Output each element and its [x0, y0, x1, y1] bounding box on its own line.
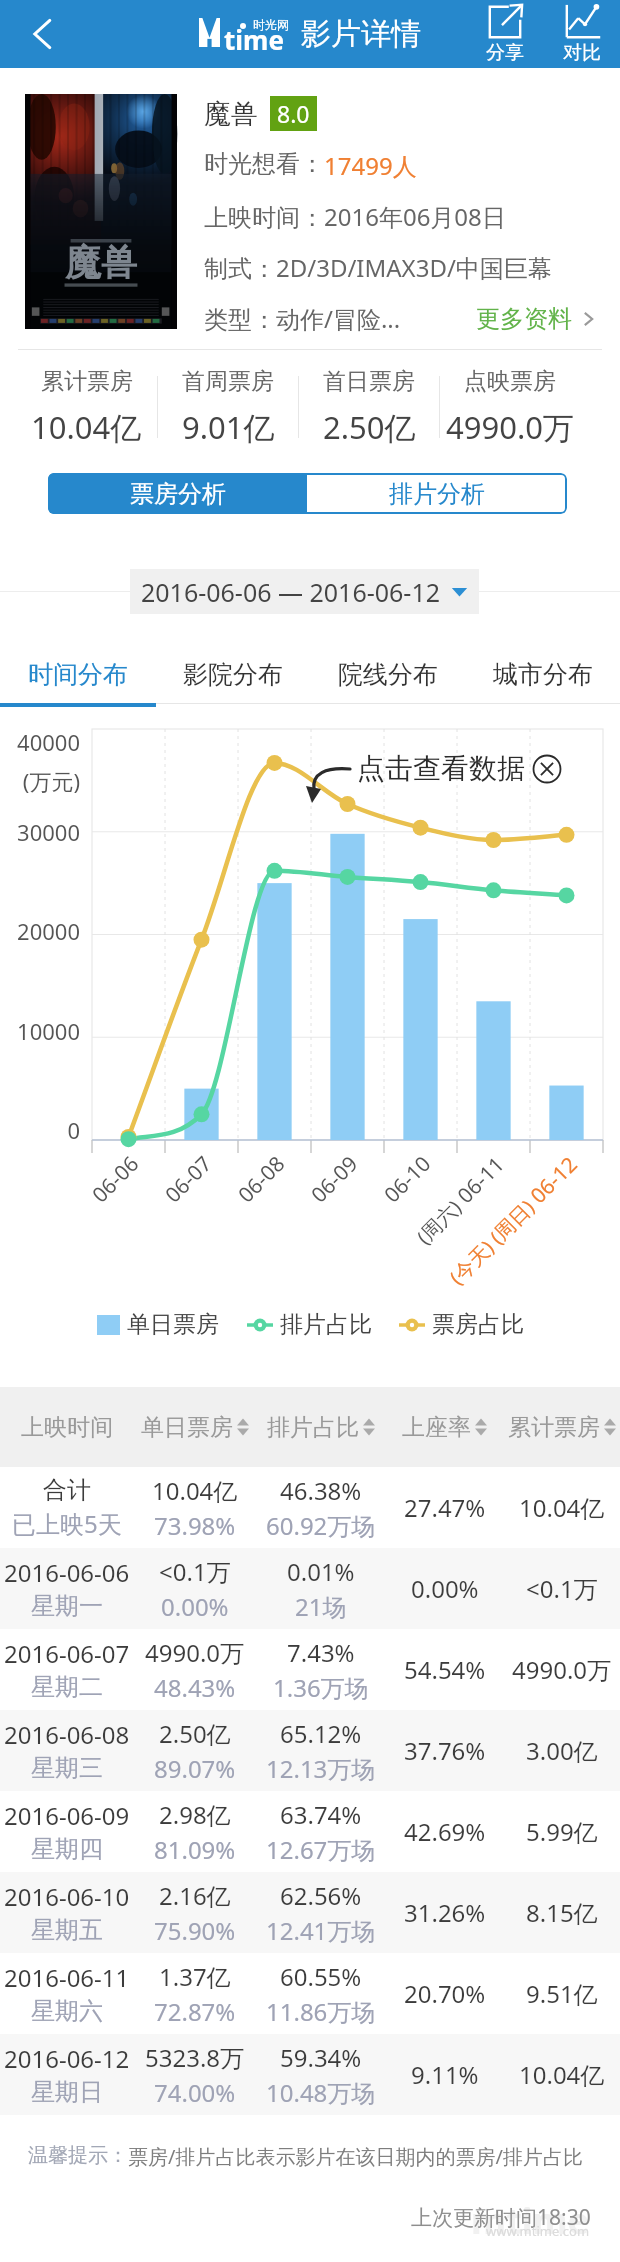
staticText: 59.34% [280, 2041, 362, 2074]
staticText: 排片占比 [280, 1310, 372, 1339]
button[interactable]: Back [0, 0, 86, 68]
staticText: <0.1万 [526, 1572, 598, 1605]
staticText: 1.37亿 [159, 1960, 231, 1993]
staticText: 魔兽 [204, 97, 258, 131]
staticText: 排片占比 [267, 1413, 359, 1442]
staticText: 院线分布 [338, 659, 438, 690]
staticText: 票房占比 [432, 1310, 524, 1339]
staticText: 06-09 [305, 1150, 364, 1209]
staticText: 星期一 [31, 1591, 103, 1621]
staticText: 单日票房 [127, 1310, 219, 1339]
staticText: 06-07 [159, 1150, 218, 1209]
staticText: 单日票房 [141, 1413, 233, 1442]
staticText: 42.69% [404, 1815, 486, 1848]
staticText: 9.01亿 [182, 406, 275, 448]
staticText: 点映票房 [464, 367, 556, 396]
staticText: 4990.0万 [512, 1653, 612, 1686]
staticText: 10.48万场 [266, 2076, 376, 2109]
staticText: 2.50亿 [159, 1717, 231, 1750]
staticText: 17499人 [324, 149, 417, 182]
button[interactable]: 上座率 [385, 1387, 504, 1467]
button[interactable]: 2016-06-09 [0, 1791, 620, 1872]
staticText: 星期四 [31, 1834, 103, 1864]
staticText: 星期日 [31, 2077, 103, 2107]
button[interactable]: 2016-06-11 [0, 1953, 620, 2034]
button[interactable]: 魔兽 [25, 94, 177, 329]
staticText: 2016-06-08 [4, 1718, 130, 1751]
staticText: 06-06 [86, 1150, 145, 1209]
staticText: 2016-06-11 [4, 1961, 130, 1994]
staticText: 累计票房 [508, 1413, 600, 1442]
button[interactable]: 城市分布 [465, 645, 620, 703]
staticText: 3.00亿 [526, 1734, 598, 1767]
staticText: 已上映5天 [12, 1507, 122, 1540]
staticText: (今天) (周日) [443, 1190, 544, 1290]
staticText: 62.56% [280, 1879, 362, 1912]
button[interactable]: 票房分析 [48, 473, 307, 514]
staticText: 60.55% [280, 1960, 362, 1993]
staticText: 10.04亿 [519, 1491, 605, 1524]
staticText: 10.04亿 [519, 2058, 605, 2091]
staticText: 9.51亿 [526, 1977, 598, 2010]
button[interactable]: 排片占比 [256, 1387, 385, 1467]
staticText: 10.04亿 [31, 406, 142, 448]
staticText: 0.00% [411, 1572, 479, 1605]
staticText: 06-11 [451, 1150, 510, 1210]
staticText: (周六) [411, 1190, 471, 1250]
staticText: 8.0 [277, 98, 310, 129]
staticText: 31.26% [404, 1896, 486, 1929]
staticText: 20000 [0, 916, 80, 946]
staticText: 2016-06-10 [4, 1880, 130, 1913]
staticText: 2.16亿 [159, 1879, 231, 1912]
button[interactable]: 2016-06-10 [0, 1872, 620, 1953]
button[interactable]: 合计 [0, 1467, 620, 1548]
button[interactable]: 单日票房 [133, 1387, 256, 1467]
staticText: 类型：动作/冒险... [204, 302, 401, 335]
button[interactable]: 2016-06-06 — 2016-06-12 [130, 569, 479, 614]
staticText: 5323.8万 [145, 2041, 245, 2074]
button[interactable]: 影院分布 [155, 645, 310, 703]
staticText: 9.11% [411, 2058, 479, 2091]
button[interactable]: 2016-06-06 [0, 1548, 620, 1629]
staticText: 46.38% [280, 1474, 362, 1507]
staticText: www.mtime.com [486, 2222, 590, 2240]
staticText: 27.47% [404, 1491, 486, 1524]
button[interactable]: 分享 [466, 0, 543, 68]
staticText: 2016-06-09 [4, 1799, 130, 1832]
staticText: 1.36万场 [273, 1671, 369, 1704]
staticText: 星期二 [31, 1672, 103, 1702]
staticText: <0.1万 [159, 1555, 231, 1588]
staticText: 06-08 [232, 1150, 291, 1209]
button[interactable]: 更多资料 [476, 304, 600, 334]
staticText: 魔兽 [65, 240, 137, 285]
staticText: (万元) [0, 766, 80, 796]
staticText: 上映时间：2016年06月08日 [204, 200, 506, 233]
staticText: 温馨提示： [28, 2143, 128, 2168]
staticText: 10.04亿 [152, 1474, 238, 1507]
button[interactable]: 时间分布 [0, 645, 155, 703]
staticText: 2016-06-12 [4, 2042, 130, 2075]
staticText: 星期三 [31, 1753, 103, 1783]
staticText: 2016-06-06 [4, 1556, 130, 1589]
staticText: 06-10 [378, 1150, 437, 1209]
staticText: mtime [471, 2196, 590, 2242]
staticText: 2.98亿 [159, 1798, 231, 1831]
button[interactable]: 2016-06-12 [0, 2034, 620, 2115]
staticText: 30000 [0, 817, 80, 847]
button[interactable]: 2016-06-08 [0, 1710, 620, 1791]
staticText: 12.41万场 [266, 1914, 376, 1947]
button[interactable]: 累计票房 [504, 1387, 620, 1467]
button[interactable]: 对比 [543, 0, 620, 68]
staticText: 上次更新时间18:30 [411, 2203, 591, 2232]
button[interactable]: 上映时间 [0, 1387, 133, 1467]
staticText: 上映时间 [21, 1413, 113, 1442]
button[interactable]: 院线分布 [310, 645, 465, 703]
staticText: 0.00% [161, 1590, 229, 1623]
button[interactable]: 2016-06-07 [0, 1629, 620, 1710]
staticText: 20.70% [404, 1977, 486, 2010]
staticText: 89.07% [154, 1752, 236, 1785]
staticText: 点击查看数据 [357, 751, 525, 786]
button[interactable]: 排片分析 [307, 473, 567, 514]
staticText: 0 [0, 1115, 80, 1145]
staticText: 2.50亿 [323, 406, 416, 448]
